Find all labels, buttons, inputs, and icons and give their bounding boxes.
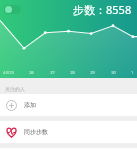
button[interactable]: Toggle view bbox=[4, 5, 21, 14]
staticText: 1 bbox=[131, 70, 134, 75]
staticText: 26 bbox=[29, 70, 34, 75]
button[interactable]: 添加 bbox=[0, 94, 137, 116]
staticText: 同步步数 bbox=[24, 128, 48, 136]
staticText: 关注的人 bbox=[5, 86, 25, 92]
button[interactable]: 同步步数 bbox=[0, 121, 137, 143]
staticText: 步数：8558 bbox=[73, 2, 132, 17]
staticText: 29 bbox=[90, 70, 95, 75]
staticText: 添加 bbox=[24, 101, 36, 109]
staticText: 28 bbox=[70, 70, 75, 75]
staticText: 27 bbox=[50, 70, 55, 75]
staticText: 4月25 bbox=[3, 70, 14, 75]
staticText: 30 bbox=[111, 70, 116, 75]
